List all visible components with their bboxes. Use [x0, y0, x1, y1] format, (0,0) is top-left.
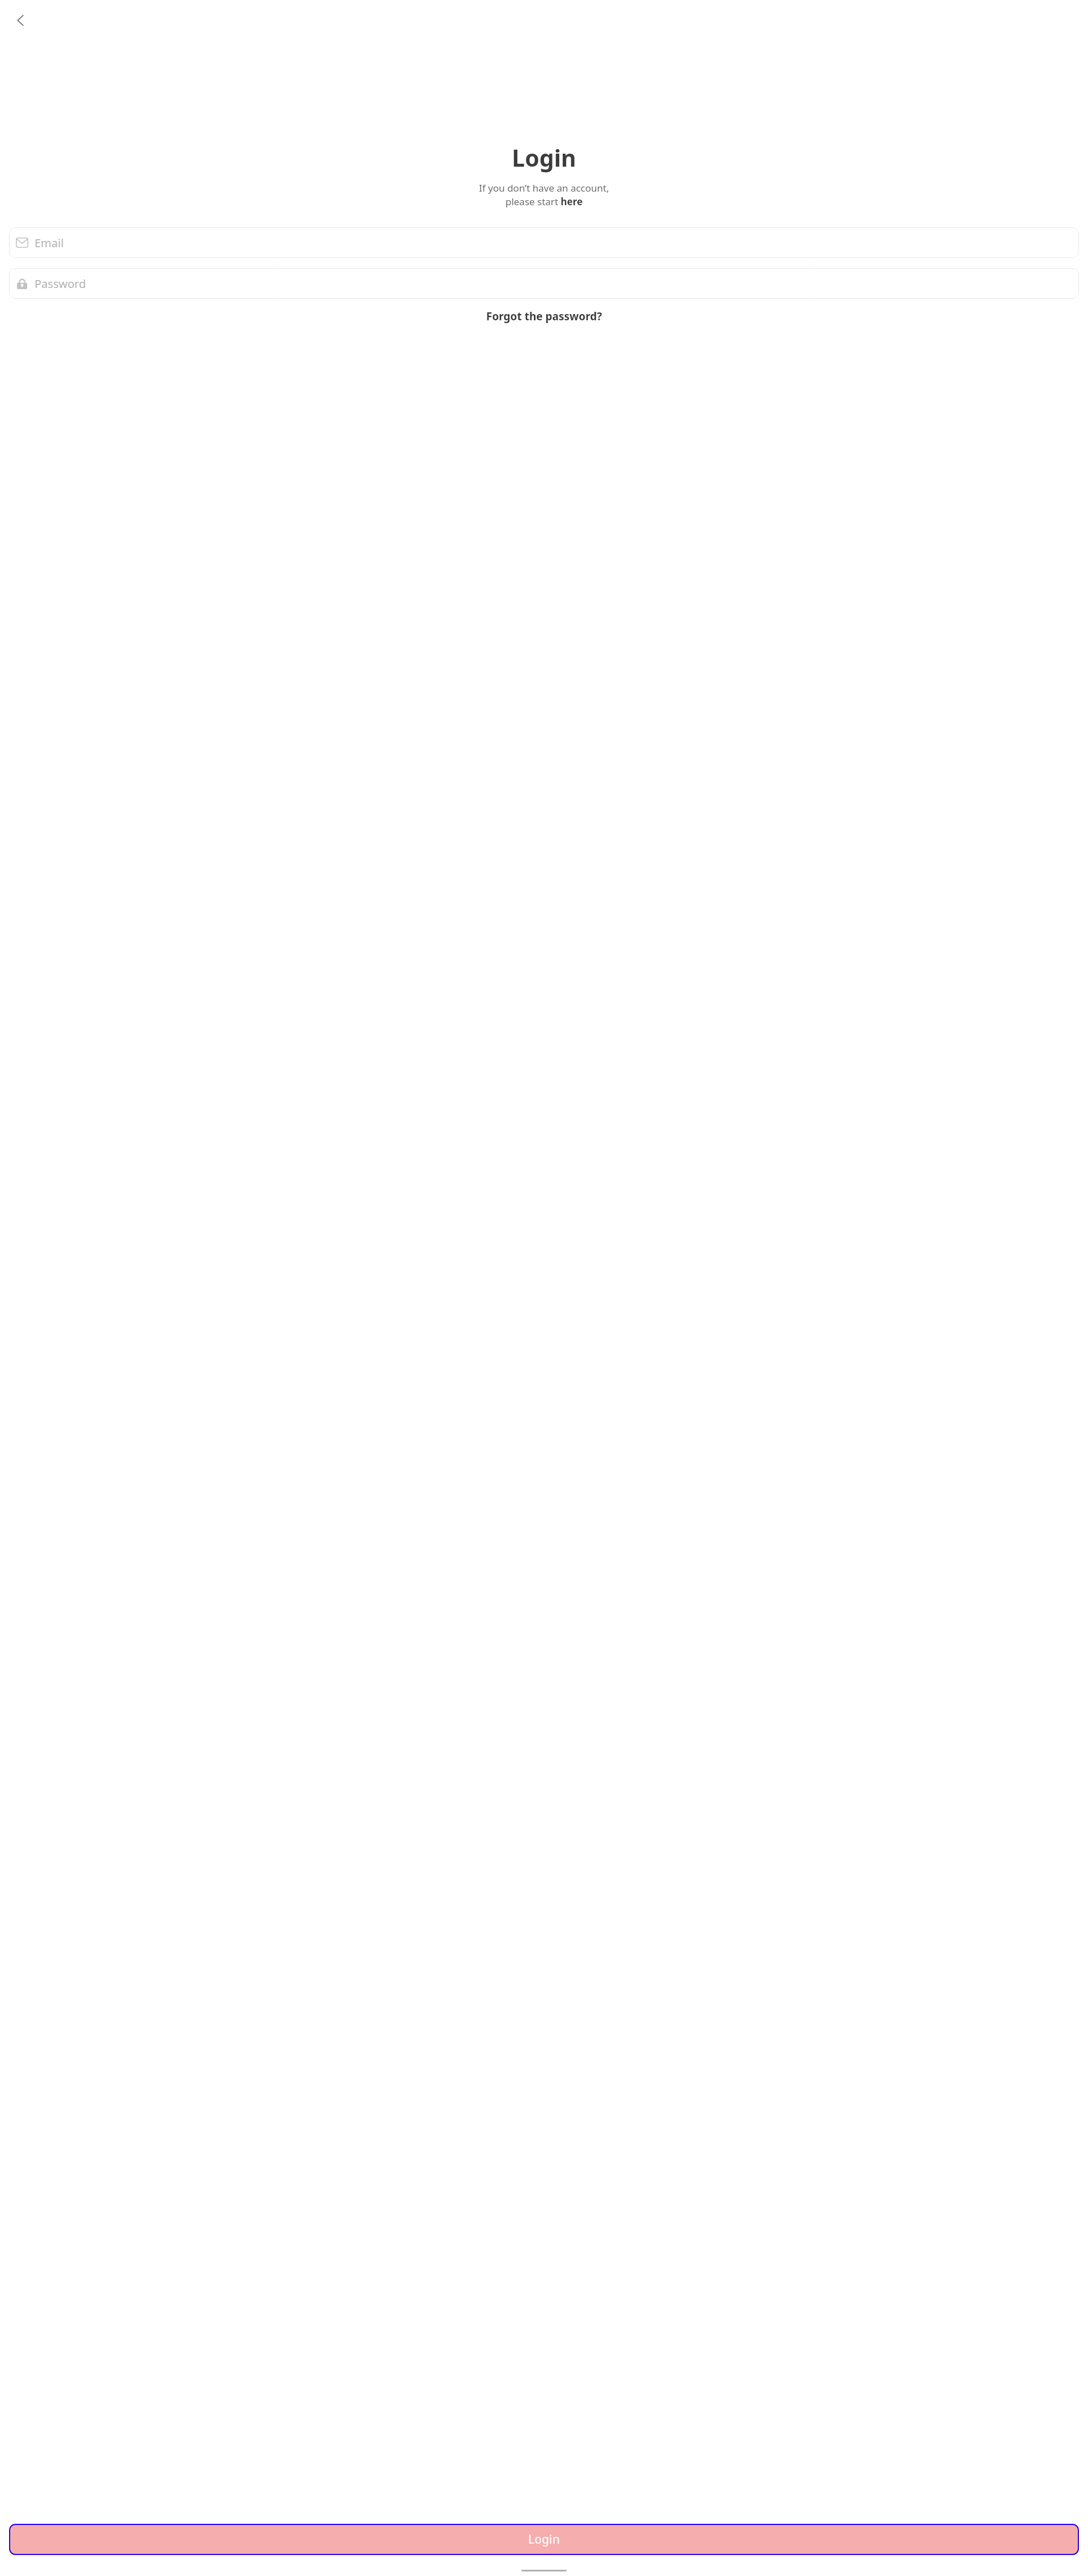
button[interactable]: Email: [9, 227, 1079, 258]
button[interactable]: Back: [7, 7, 34, 34]
staticText: Login: [512, 142, 576, 173]
staticText: If you don’t have an account, please sta…: [465, 181, 623, 208]
staticText: Password: [35, 276, 86, 291]
button[interactable]: Login: [10, 2525, 1078, 2554]
button[interactable]: Forgot the password?: [482, 307, 607, 326]
staticText: Login: [528, 2531, 560, 2548]
staticText: Forgot the password?: [486, 309, 602, 324]
staticText: Email: [35, 235, 64, 251]
button[interactable]: Password: [9, 268, 1079, 299]
